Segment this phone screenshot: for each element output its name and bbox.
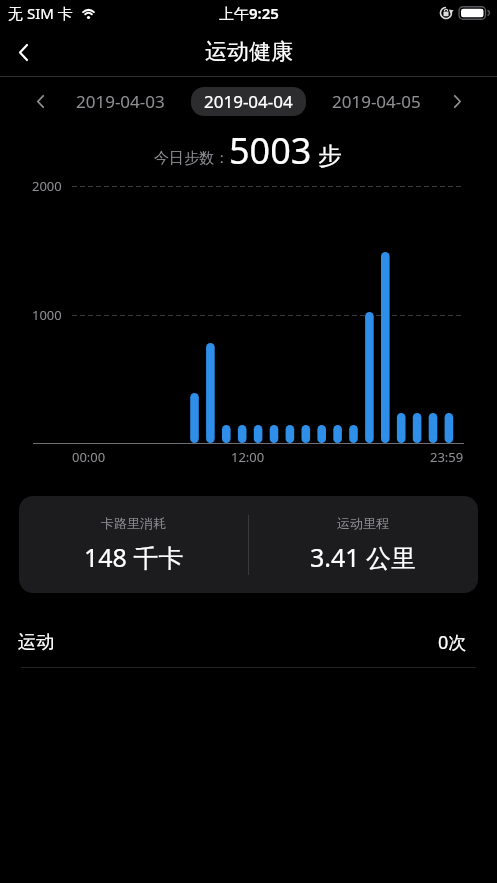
- staticText: 2019-04-04: [204, 90, 293, 113]
- button[interactable]: 2019-04-04: [191, 87, 306, 116]
- staticText: 卡路里消耗: [101, 515, 166, 531]
- staticText: 今日步数：: [154, 149, 229, 168]
- staticText: 上午9:25: [219, 3, 279, 23]
- button[interactable]: [443, 87, 471, 115]
- staticText: 无 SIM 卡: [8, 3, 73, 23]
- staticText: 23:59: [430, 448, 464, 466]
- staticText: 5003: [229, 126, 312, 175]
- staticText: 00:00: [72, 448, 106, 466]
- staticText: 运动: [18, 631, 54, 654]
- staticText: 12:00: [231, 448, 265, 466]
- staticText: 运动健康: [205, 38, 293, 66]
- staticText: 148 千卡: [84, 540, 184, 574]
- button[interactable]: 2019-04-03: [76, 90, 165, 113]
- button[interactable]: 2019-04-05: [332, 90, 421, 113]
- staticText: 3.41 公里: [310, 540, 417, 574]
- button[interactable]: 运动: [0, 617, 497, 667]
- staticText: 步: [312, 138, 343, 171]
- staticText: 运动里程: [337, 515, 389, 531]
- button[interactable]: 卡路里消耗: [19, 496, 478, 593]
- staticText: 2000: [32, 177, 62, 195]
- button[interactable]: [6, 35, 40, 69]
- button[interactable]: [26, 87, 54, 115]
- staticText: 1000: [32, 306, 62, 324]
- staticText: 0次: [438, 630, 467, 655]
